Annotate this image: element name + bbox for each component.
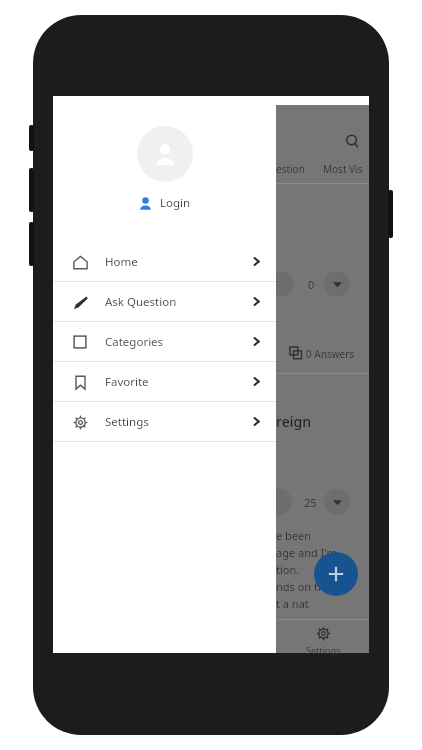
staticText: nds on th — [276, 579, 325, 594]
button[interactable]: Settings — [53, 402, 276, 441]
staticText: e been — [276, 528, 312, 543]
button[interactable]: Search — [342, 131, 362, 151]
staticText: Settings — [105, 414, 149, 430]
staticText: age and I'm — [276, 545, 337, 560]
staticText: Ask Question — [105, 294, 177, 310]
staticText: tion. — [276, 562, 300, 577]
staticText: Categories — [105, 334, 164, 350]
staticText: reign — [276, 412, 311, 431]
staticText: 25 — [304, 495, 317, 510]
button[interactable]: Ask Question — [53, 282, 276, 321]
staticText: 0 — [308, 277, 315, 292]
button[interactable]: Add question — [314, 552, 358, 596]
staticText: t a nat — [276, 596, 309, 611]
staticText: Home — [105, 254, 138, 270]
staticText: Favorite — [105, 374, 149, 390]
button[interactable]: Settings — [299, 626, 347, 656]
staticText: estion — [276, 162, 305, 176]
button[interactable]: Categories — [53, 322, 276, 361]
button[interactable]: Favorite — [53, 362, 276, 401]
staticText: 0 Answers — [306, 347, 355, 361]
button[interactable]: Home — [53, 242, 276, 281]
staticText: Settings — [306, 644, 341, 656]
button[interactable]: Login — [53, 191, 276, 215]
staticText: Most Vis — [323, 162, 363, 176]
staticText: Login — [160, 195, 191, 211]
